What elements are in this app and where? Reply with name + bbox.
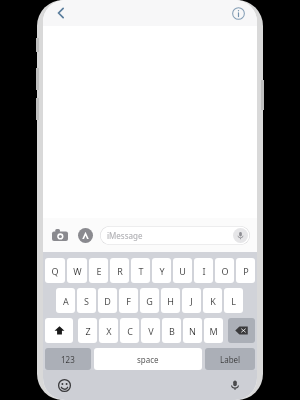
button[interactable]: Camera — [50, 225, 70, 245]
button[interactable]: X — [99, 318, 118, 343]
button[interactable]: Y — [152, 258, 171, 283]
staticText: K — [210, 295, 216, 307]
button[interactable]: H — [161, 288, 180, 313]
button[interactable]: Dictate — [233, 228, 248, 243]
staticText: Z — [85, 325, 91, 337]
button[interactable]: D — [98, 288, 117, 313]
button[interactable]: N — [183, 318, 202, 343]
button[interactable]: iMessage — [100, 226, 250, 245]
button[interactable]: W — [67, 258, 87, 283]
button[interactable]: space — [94, 348, 202, 370]
button[interactable]: Apps — [76, 226, 94, 244]
button[interactable]: Back — [51, 3, 71, 23]
button[interactable]: L — [224, 288, 243, 313]
staticText: A — [63, 295, 69, 307]
button[interactable]: E — [89, 258, 108, 283]
staticText: V — [148, 325, 154, 337]
button[interactable]: Emoji — [55, 376, 73, 394]
button[interactable]: Shift — [45, 318, 73, 343]
staticText: Q — [51, 265, 59, 277]
staticText: E — [96, 265, 102, 277]
staticText: R — [117, 265, 123, 277]
staticText: W — [73, 265, 82, 277]
staticText: D — [104, 295, 111, 307]
staticText: M — [209, 325, 218, 337]
button[interactable]: M — [204, 318, 223, 343]
button[interactable]: O — [215, 258, 234, 283]
button[interactable]: 123 — [45, 348, 91, 370]
staticText: G — [146, 295, 153, 307]
button[interactable]: Details — [228, 3, 248, 23]
staticText: Label — [220, 354, 241, 365]
staticText: J — [190, 295, 193, 307]
staticText: O — [221, 265, 229, 277]
staticText: I — [202, 265, 206, 277]
staticText: 123 — [61, 354, 75, 365]
button[interactable]: G — [140, 288, 159, 313]
button[interactable]: F — [119, 288, 138, 313]
staticText: Y — [159, 265, 165, 277]
button[interactable]: Backspace — [228, 318, 255, 343]
staticText: B — [169, 325, 175, 337]
button[interactable]: Dictation — [226, 376, 244, 394]
button[interactable]: A — [56, 288, 75, 313]
button[interactable]: Q — [45, 258, 65, 283]
staticText: T — [138, 265, 144, 277]
staticText: X — [106, 325, 112, 337]
button[interactable]: B — [162, 318, 181, 343]
staticText: N — [189, 325, 196, 337]
staticText: P — [243, 265, 249, 277]
button[interactable]: T — [131, 258, 150, 283]
staticText: C — [127, 325, 133, 337]
button[interactable]: U — [173, 258, 192, 283]
button[interactable]: C — [120, 318, 139, 343]
staticText: S — [84, 295, 89, 307]
staticText: iMessage — [107, 230, 143, 241]
staticText: F — [126, 295, 131, 307]
button[interactable]: Label — [205, 348, 255, 370]
button[interactable]: I — [194, 258, 213, 283]
button[interactable]: V — [141, 318, 160, 343]
button[interactable]: S — [77, 288, 96, 313]
staticText: L — [231, 295, 236, 307]
staticText: U — [179, 265, 186, 277]
button[interactable]: Z — [78, 318, 97, 343]
staticText: space — [137, 354, 159, 365]
button[interactable]: P — [236, 258, 255, 283]
button[interactable]: K — [203, 288, 222, 313]
staticText: H — [167, 295, 174, 307]
button[interactable]: J — [182, 288, 201, 313]
button[interactable]: R — [110, 258, 129, 283]
